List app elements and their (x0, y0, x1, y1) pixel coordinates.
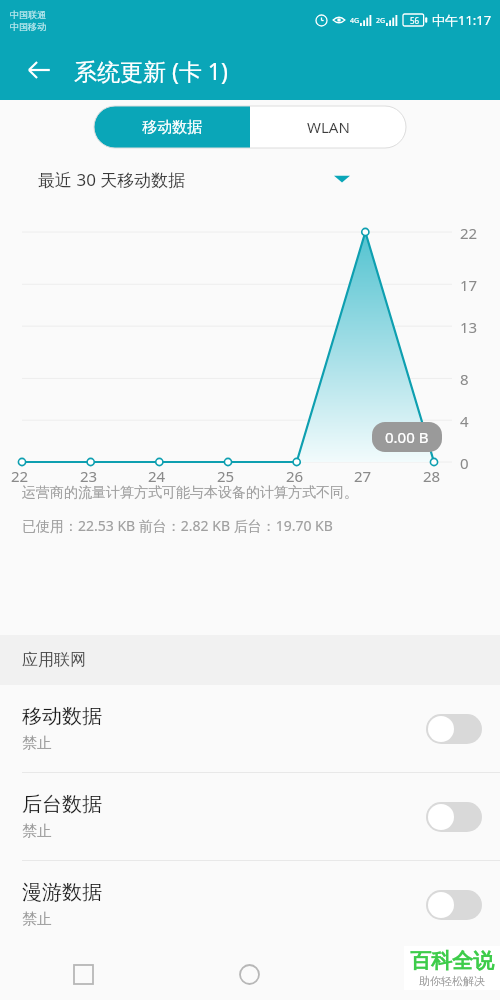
staticText: 26 (286, 466, 304, 486)
staticText: 漫游数据 (22, 880, 102, 905)
staticText: 禁止 (22, 734, 52, 753)
button[interactable]: 漫游数据 (0, 861, 500, 948)
staticText: 4G (350, 16, 360, 26)
staticText: 中国移动 (10, 21, 46, 32)
staticText: 22 (11, 466, 29, 486)
button[interactable]: 最近 30 天移动数据 (38, 162, 350, 196)
staticText: 56 (410, 15, 420, 26)
button[interactable]: Back (18, 49, 60, 91)
staticText: 中午11:17 (432, 11, 492, 29)
staticText: 23 (80, 466, 98, 486)
staticText: 2G (376, 16, 386, 26)
staticText: 最近 30 天移动数据 (38, 168, 186, 191)
staticText: 已使用：22.53 KB 前台：2.82 KB 后台：19.70 KB (22, 516, 333, 535)
button[interactable]: Back (333, 948, 500, 1000)
staticText: 移动数据 (22, 704, 102, 729)
staticText: 0 (460, 453, 469, 473)
staticText: 禁止 (22, 822, 52, 841)
staticText: 22 (460, 223, 478, 243)
staticText: 0.00 B (385, 427, 429, 447)
staticText: 24 (148, 466, 166, 486)
button[interactable]: WLAN (250, 106, 406, 148)
staticText: 28 (423, 466, 441, 486)
staticText: 移动数据 (142, 118, 202, 137)
staticText: 27 (354, 466, 372, 486)
staticText: 17 (460, 275, 478, 295)
staticText: 禁止 (22, 910, 52, 929)
button[interactable]: Recents (0, 948, 166, 1000)
staticText: 百科全说 (410, 948, 494, 974)
staticText: 8 (460, 369, 469, 389)
staticText: 运营商的流量计算方式可能与本设备的计算方式不同。 (22, 484, 358, 502)
staticText: 后台数据 (22, 792, 102, 817)
button[interactable]: 后台数据 (0, 773, 500, 860)
button[interactable]: 移动数据 (94, 106, 250, 148)
button[interactable]: Home (166, 948, 333, 1000)
staticText: 4 (460, 411, 469, 431)
staticText: 13 (460, 317, 478, 337)
staticText: 系统更新 (卡 1) (74, 55, 228, 86)
staticText: 25 (217, 466, 235, 486)
staticText: 应用联网 (22, 650, 86, 670)
staticText: 助你轻松解决 (419, 974, 485, 988)
button[interactable]: 移动数据 (0, 685, 500, 772)
staticText: 中国联通 (10, 9, 46, 20)
staticText: WLAN (307, 117, 350, 137)
